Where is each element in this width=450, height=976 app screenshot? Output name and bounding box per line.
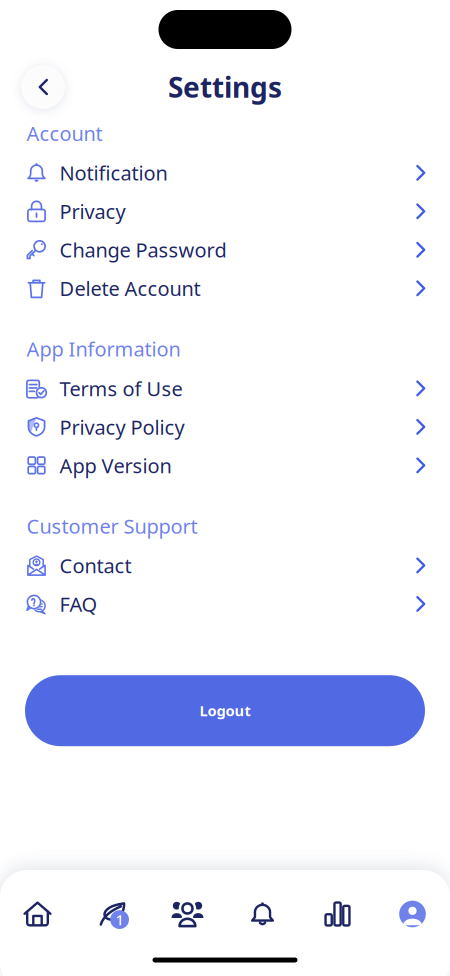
staticText: Change Password	[59, 236, 226, 263]
button[interactable]: Privacy	[0, 192, 450, 231]
button[interactable]: Home	[0, 901, 75, 927]
staticText: Notification	[59, 159, 167, 186]
button[interactable]: Privacy Policy	[0, 408, 450, 446]
button[interactable]: FAQ	[0, 585, 450, 623]
button[interactable]: Community	[150, 901, 225, 927]
staticText: App Information	[26, 336, 180, 362]
staticText: Privacy	[59, 198, 125, 225]
staticText: 1	[116, 910, 124, 929]
button[interactable]: Activity	[75, 899, 150, 929]
button[interactable]: Profile	[375, 901, 450, 927]
button[interactable]: Stats	[300, 901, 375, 927]
staticText: Settings	[168, 68, 282, 106]
button[interactable]: Logout	[25, 675, 425, 746]
button[interactable]: Delete Account	[0, 269, 450, 308]
staticText: App Version	[59, 452, 171, 479]
staticText: Delete Account	[59, 275, 200, 302]
staticText: Contact	[59, 552, 131, 579]
button[interactable]: Contact	[0, 546, 450, 585]
button[interactable]: Terms of Use	[0, 369, 450, 408]
button[interactable]: Notification	[0, 154, 450, 192]
staticText: Logout	[199, 701, 250, 720]
staticText: Account	[26, 120, 102, 147]
button[interactable]: Notifications	[225, 902, 300, 926]
staticText: Privacy Policy	[59, 414, 184, 440]
button[interactable]: Back	[21, 65, 65, 109]
staticText: FAQ	[59, 591, 97, 617]
button[interactable]: Change Password	[0, 231, 450, 269]
staticText: Customer Support	[26, 513, 197, 539]
staticText: Terms of Use	[59, 375, 182, 402]
button[interactable]: App Version	[0, 446, 450, 485]
